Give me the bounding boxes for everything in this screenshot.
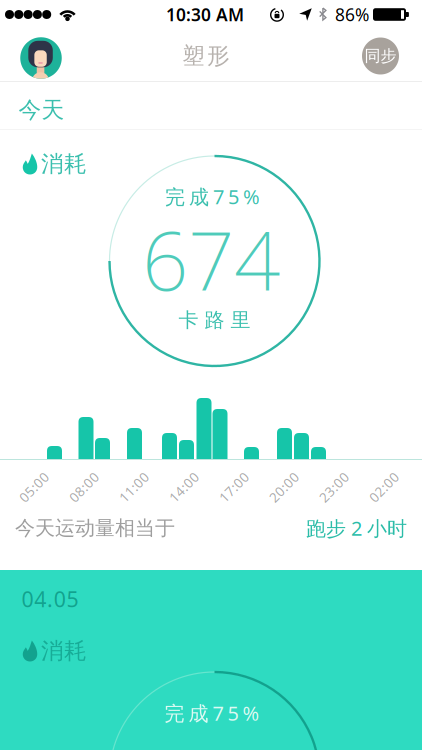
- button[interactable]: 同步: [362, 37, 399, 74]
- staticText: 04.05: [21, 585, 79, 613]
- staticText: 02:00: [366, 478, 402, 496]
- staticText: 05:00: [16, 478, 52, 496]
- staticText: 塑形: [182, 42, 230, 70]
- staticText: 20:00: [266, 478, 302, 496]
- staticText: 完成75%: [165, 183, 260, 210]
- staticText: 86%: [335, 3, 369, 26]
- staticText: 674: [142, 205, 280, 313]
- staticText: 11:00: [116, 478, 152, 496]
- staticText: 08:00: [66, 478, 102, 496]
- staticText: 跑步 2 小时: [306, 515, 407, 541]
- staticText: 消耗: [41, 637, 87, 665]
- staticText: 17:00: [216, 478, 252, 496]
- staticText: 今天: [18, 96, 64, 124]
- staticText: 卡路里: [178, 308, 250, 332]
- button[interactable]: [20, 37, 62, 79]
- staticText: 消耗: [41, 150, 87, 178]
- staticText: 同步: [364, 46, 396, 66]
- staticText: 23:00: [316, 478, 352, 496]
- staticText: 14:00: [166, 478, 202, 496]
- staticText: 完成75%: [164, 700, 259, 726]
- staticText: 10:30 AM: [166, 3, 244, 26]
- staticText: 今天运动量相当于: [15, 516, 175, 540]
